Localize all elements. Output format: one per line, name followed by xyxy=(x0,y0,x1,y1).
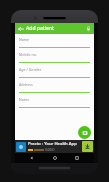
button[interactable]: Age / Gender xyxy=(19,67,90,78)
button[interactable]: Back xyxy=(15,23,26,34)
button[interactable]: Notes xyxy=(19,97,90,108)
staticText: Age / Gender xyxy=(19,67,42,72)
button[interactable]: Install xyxy=(82,141,93,152)
button[interactable]: Address xyxy=(19,82,90,93)
button[interactable]: Home xyxy=(50,153,60,163)
button[interactable]: Back xyxy=(27,153,37,163)
button[interactable]: Recent apps xyxy=(72,153,82,163)
button[interactable]: Advertisement xyxy=(15,140,94,153)
button[interactable]: Save xyxy=(83,23,94,34)
staticText: Add patient xyxy=(26,25,83,32)
staticText: Mobile no. xyxy=(19,52,37,57)
staticText: Name xyxy=(19,37,30,42)
staticText: (606K) xyxy=(45,148,55,152)
button[interactable]: Name xyxy=(19,37,90,48)
staticText: Practo : Your Health App xyxy=(28,141,77,147)
button[interactable]: Mobile no. xyxy=(19,52,90,63)
staticText: Address xyxy=(19,82,33,87)
staticText: Notes xyxy=(19,97,29,102)
button[interactable]: Add xyxy=(78,126,91,139)
